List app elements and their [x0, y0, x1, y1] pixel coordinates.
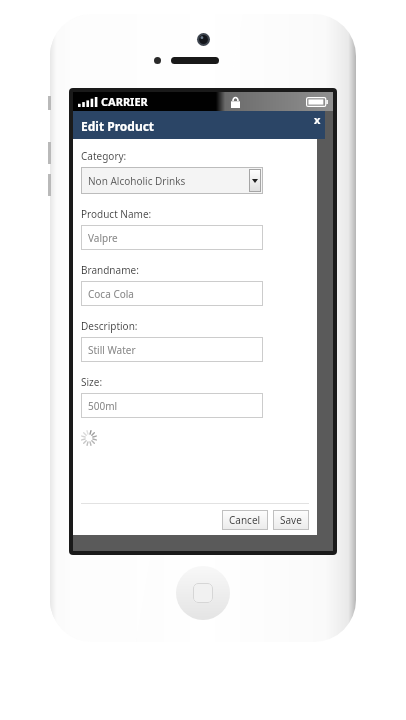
button[interactable]: Home — [176, 566, 230, 620]
staticText: x — [314, 112, 321, 127]
staticText: Category: — [81, 149, 127, 163]
staticText: CARRIER — [101, 94, 148, 109]
staticText: 500ml — [88, 399, 118, 413]
staticText: Valpre — [88, 231, 118, 245]
staticText: Still Water — [88, 343, 136, 357]
button[interactable]: Close — [309, 111, 325, 127]
staticText: Cancel — [229, 513, 261, 527]
staticText: Brandname: — [81, 263, 139, 277]
staticText: Size: — [81, 375, 103, 389]
button[interactable]: 500ml — [81, 393, 263, 418]
button[interactable]: Coca Cola — [81, 281, 263, 306]
staticText: Description: — [81, 319, 138, 333]
button[interactable]: Still Water — [81, 337, 263, 362]
button[interactable]: Cancel — [222, 510, 268, 530]
staticText: Edit Product — [81, 118, 155, 134]
staticText: Save — [280, 513, 302, 527]
staticText: Coca Cola — [88, 287, 134, 301]
button[interactable]: Valpre — [81, 225, 263, 250]
button[interactable]: Non Alcoholic Drinks — [81, 167, 263, 194]
staticText: Non Alcoholic Drinks — [88, 174, 186, 188]
staticText: Product Name: — [81, 207, 152, 221]
button[interactable]: Save — [273, 510, 309, 530]
